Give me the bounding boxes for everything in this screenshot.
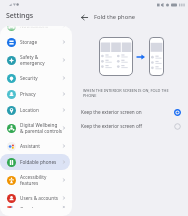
button[interactable]: Safety & emergency: [0, 50, 70, 70]
staticText: WHEN THE INTERIOR SCREEN IS ON, FOLD THE…: [83, 88, 169, 98]
staticText: Keep the exterior screen off: [81, 123, 174, 129]
staticText: Notifications: [20, 26, 62, 29]
staticText: Fold the phone: [94, 13, 136, 21]
staticText: Location: [20, 107, 62, 113]
button[interactable]: Foldable phones: [0, 154, 70, 170]
staticText: Google: [20, 206, 62, 208]
button[interactable]: Storage: [0, 34, 70, 50]
staticText: Accessibility features: [20, 174, 62, 186]
staticText: Foldable phones: [20, 159, 62, 165]
staticText: Users & accounts: [20, 195, 62, 201]
staticText: Digital Wellbeing & parental controls: [20, 122, 62, 134]
button[interactable]: Keep the exterior screen on: [73, 105, 188, 119]
staticText: Safety & emergency: [20, 54, 62, 66]
button[interactable]: Notifications: [0, 26, 70, 34]
button[interactable]: Location: [0, 102, 70, 118]
button[interactable]: Accessibility features: [0, 170, 70, 190]
staticText: Keep the exterior screen on: [81, 109, 174, 115]
button[interactable]: Privacy: [0, 86, 70, 102]
button[interactable]: Keep the exterior screen off: [73, 119, 188, 133]
button[interactable]: Assistant: [0, 138, 70, 154]
button[interactable]: Digital Wellbeing & parental controls: [0, 118, 70, 138]
button[interactable]: Security: [0, 70, 70, 86]
staticText: Storage: [20, 39, 62, 45]
staticText: Privacy: [20, 91, 62, 97]
button[interactable]: Users & accounts: [0, 190, 70, 206]
staticText: Security: [20, 75, 62, 81]
staticText: Settings: [6, 11, 34, 21]
staticText: Assistant: [20, 143, 62, 149]
button[interactable]: Back: [77, 10, 91, 24]
button[interactable]: Google: [0, 206, 70, 208]
